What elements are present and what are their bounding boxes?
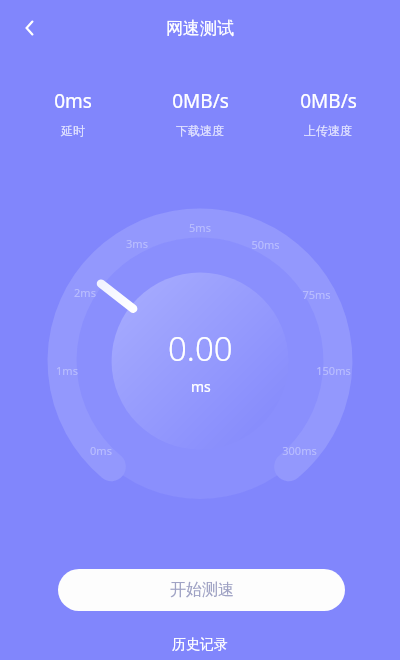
staticText: 历史记录 (172, 636, 228, 654)
staticText: 下载速度 (176, 123, 224, 138)
staticText: 3ms (126, 236, 148, 251)
staticText: 网速测试 (166, 18, 234, 39)
staticText: 0MB/s (300, 88, 357, 114)
staticText: 300ms (282, 443, 317, 458)
staticText: 0ms (90, 443, 112, 458)
staticText: 5ms (189, 220, 211, 235)
staticText: 50ms (251, 237, 280, 252)
button[interactable]: 开始测速 (58, 569, 345, 611)
staticText: 75ms (302, 287, 331, 302)
button[interactable]: 历史记录 (160, 633, 240, 657)
staticText: 1ms (56, 363, 78, 378)
staticText: 0ms (54, 88, 92, 114)
staticText: 2ms (74, 285, 96, 300)
staticText: 开始测速 (170, 580, 234, 600)
staticText: ms (191, 377, 211, 396)
button[interactable]: Back (10, 8, 50, 48)
staticText: 上传速度 (304, 123, 352, 138)
staticText: 150ms (316, 363, 351, 378)
staticText: 0MB/s (172, 88, 229, 114)
staticText: 延时 (61, 123, 85, 138)
staticText: 0.00 (168, 326, 233, 371)
